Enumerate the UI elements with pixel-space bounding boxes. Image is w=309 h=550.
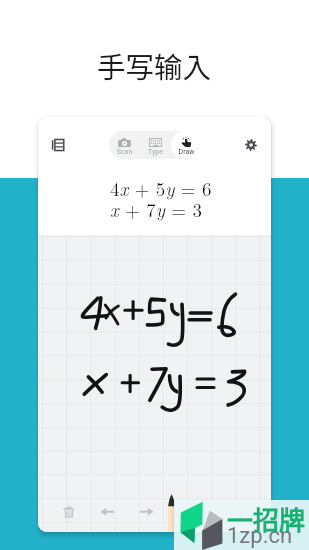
staticText: Type — [140, 148, 171, 156]
button[interactable]: Delete — [56, 499, 82, 525]
staticText: Scan — [109, 148, 140, 156]
staticText: 一招牌 — [227, 500, 306, 538]
button[interactable]: Type — [140, 131, 171, 159]
staticText: 手写输入 — [97, 45, 212, 86]
button[interactable]: Scan — [109, 131, 140, 159]
staticText: x + 7y = 3 — [110, 196, 202, 223]
button[interactable]: History — [44, 131, 72, 159]
button[interactable]: Settings — [237, 131, 265, 159]
staticText: 1zp.cn — [227, 523, 293, 549]
button[interactable]: Redo — [134, 499, 160, 525]
staticText: 4x + 5y = 6 — [110, 175, 212, 202]
button[interactable]: Draw — [171, 131, 202, 159]
staticText: Draw — [171, 148, 202, 156]
button[interactable]: Undo — [94, 499, 120, 525]
